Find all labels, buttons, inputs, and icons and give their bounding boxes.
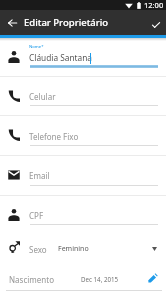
staticText: Nome* [29,44,44,50]
staticText: Nascimento [9,274,54,285]
button[interactable] [0,264,166,291]
staticText: Celular [29,91,56,102]
button[interactable]: Back [4,14,21,31]
staticText: Dec 14, 2015 [81,275,119,283]
button[interactable] [0,157,166,195]
button[interactable] [0,197,166,234]
button[interactable]: Edit birth date [148,273,158,283]
staticText: Editar Proprietário [24,16,109,29]
button[interactable] [0,78,166,115]
staticText: Feminino [58,244,89,254]
staticText: Telefone Fixo [29,131,79,142]
button[interactable] [0,117,166,155]
staticText: Cláudia Santana [29,52,92,63]
button[interactable]: Save [147,16,164,33]
staticText: Sexo [29,244,47,255]
button[interactable] [0,40,166,76]
staticText: 12:00 [144,0,164,10]
button[interactable] [0,237,166,262]
staticText: Email [29,170,50,181]
staticText: CPF [29,210,44,221]
